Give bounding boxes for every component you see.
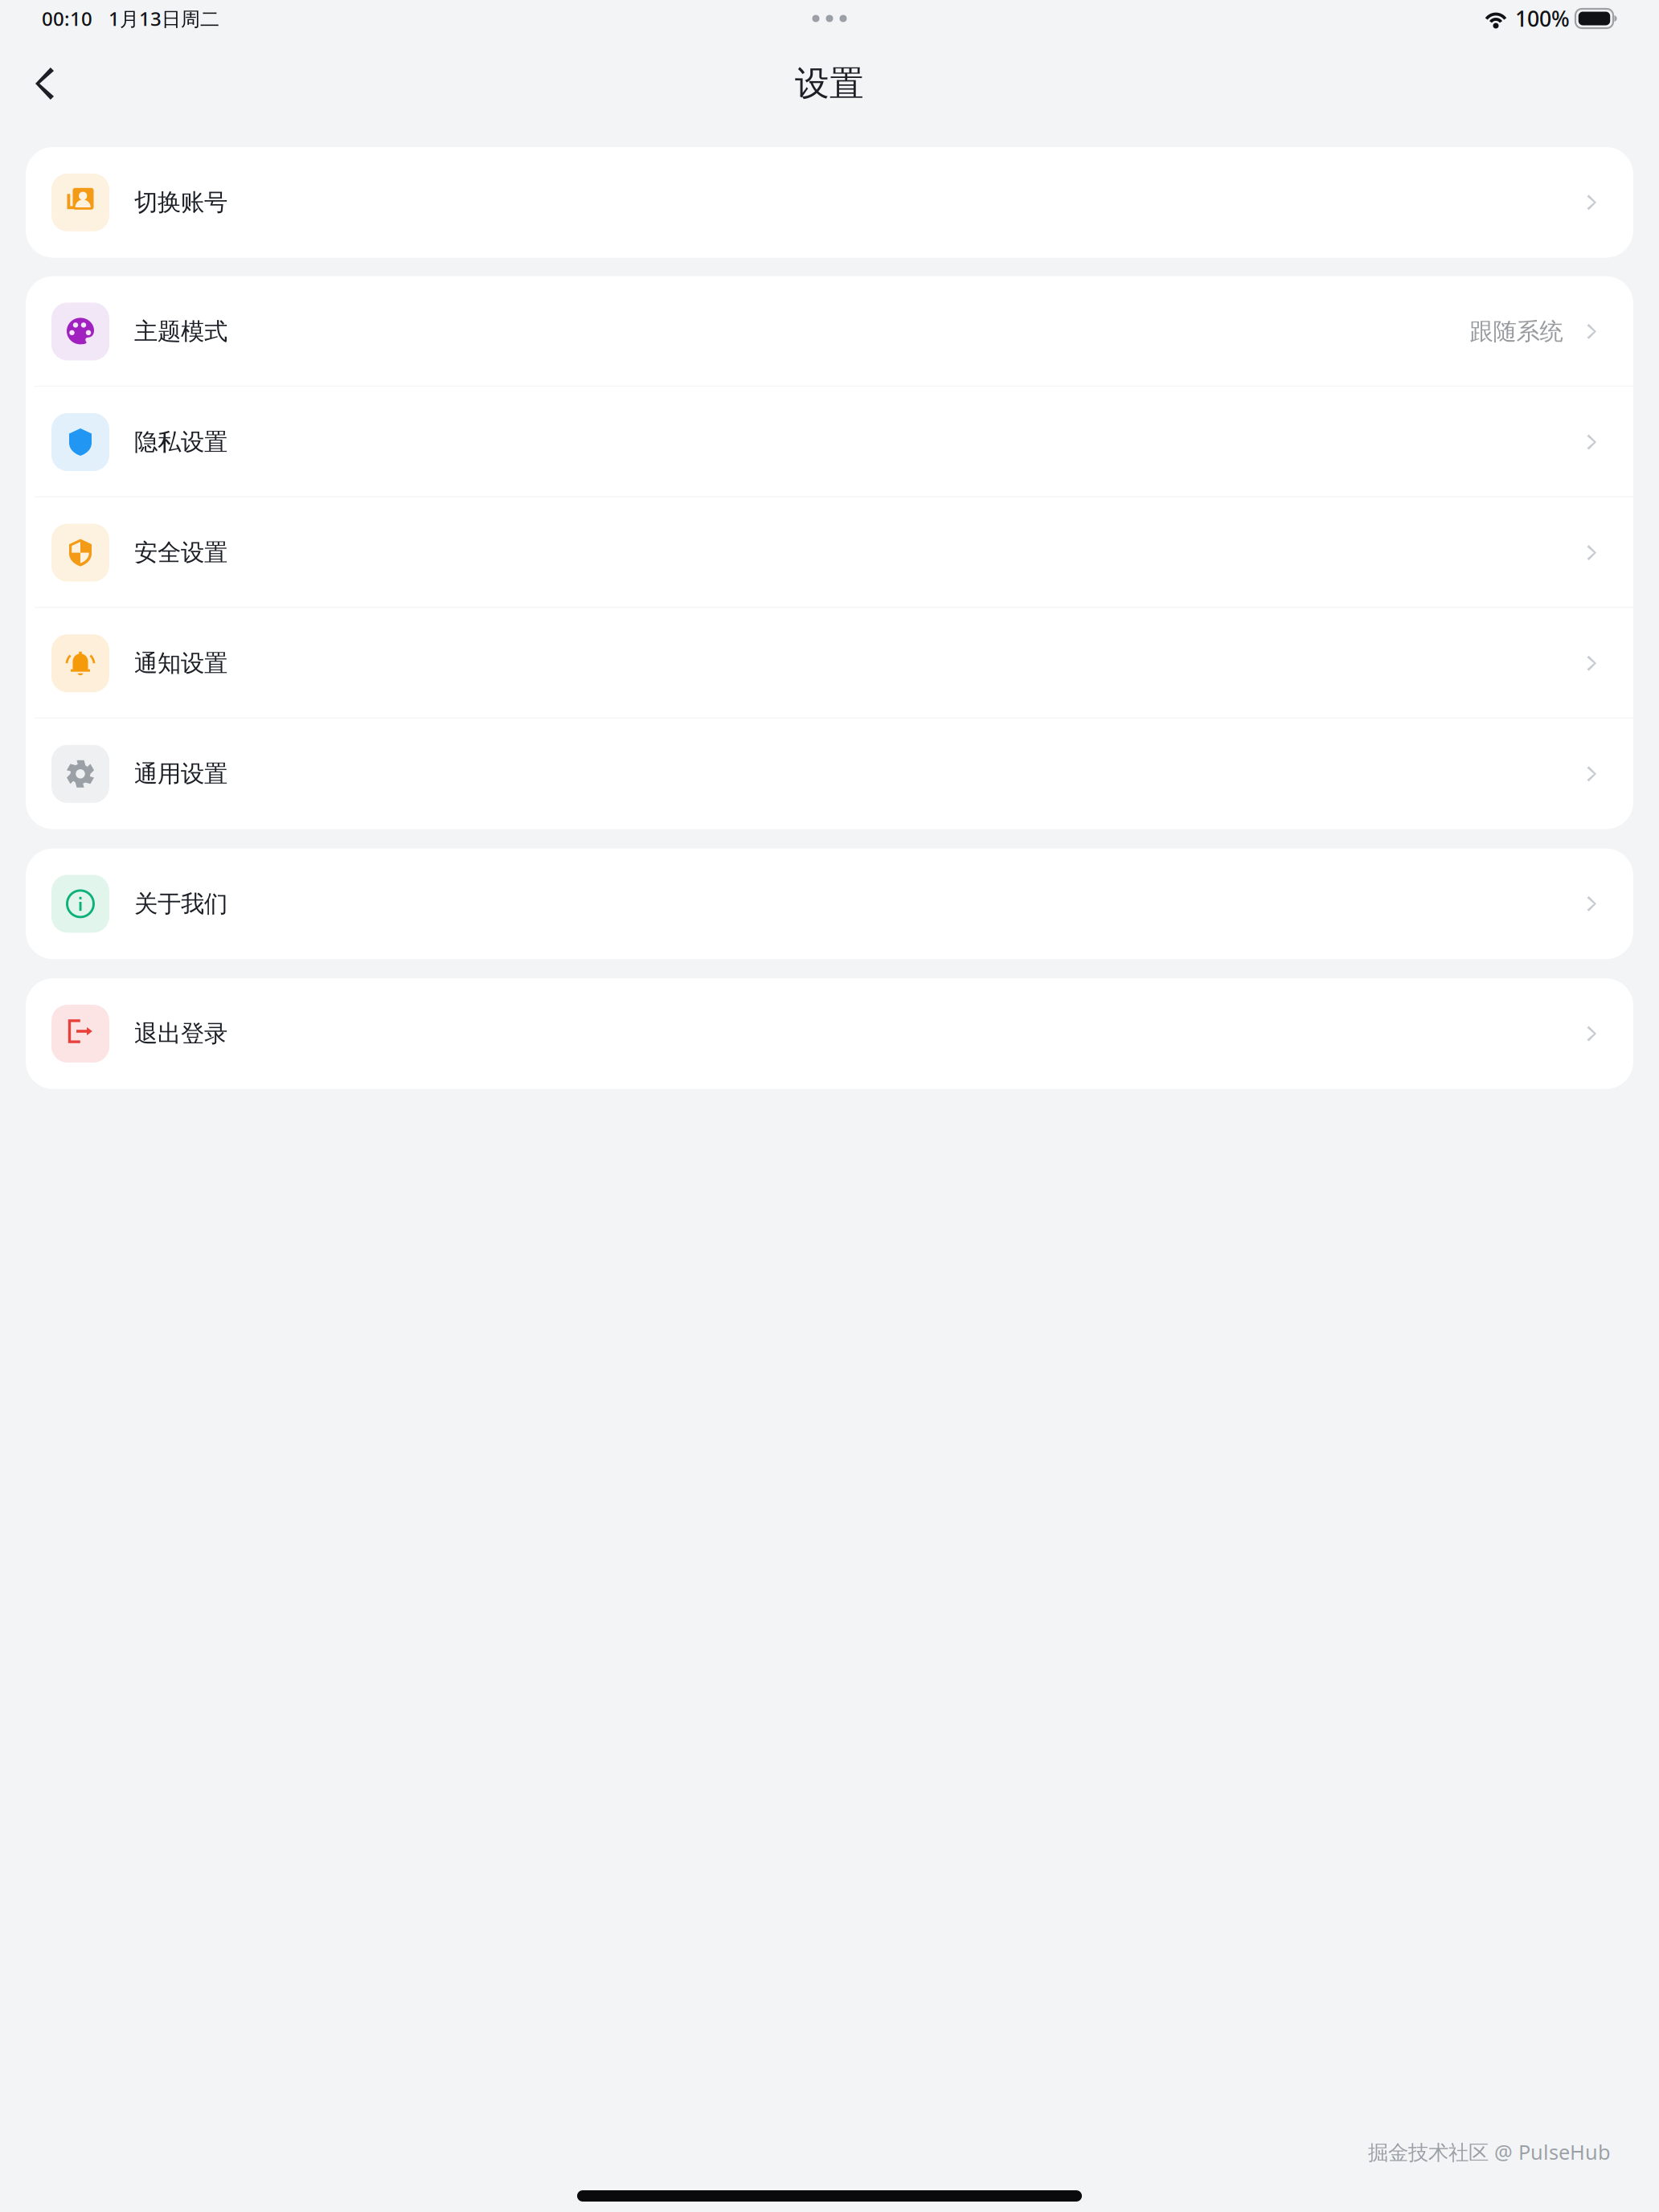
button[interactable]: 安全设置	[26, 497, 1633, 608]
button[interactable]: 切换账号	[26, 147, 1633, 258]
button[interactable]: 关于我们	[26, 848, 1633, 959]
staticText: 掘金技术社区 @ PulseHub	[1368, 2138, 1611, 2165]
staticText: 1月13日周二	[109, 6, 219, 31]
staticText: 100%	[1515, 4, 1570, 33]
button[interactable]: Back	[14, 47, 75, 121]
staticText: 00:10	[42, 6, 92, 31]
button[interactable]: 通用设置	[26, 719, 1633, 829]
button[interactable]: 退出登录	[26, 978, 1633, 1089]
staticText: 跟随系统	[1470, 317, 1563, 346]
staticText: 主题模式	[134, 317, 227, 346]
staticText: 安全设置	[134, 538, 227, 567]
button[interactable]: 通知设置	[26, 608, 1633, 719]
staticText: 通用设置	[134, 759, 227, 788]
staticText: 隐私设置	[134, 428, 227, 457]
staticText: 切换账号	[134, 188, 227, 217]
staticText: 通知设置	[134, 649, 227, 678]
staticText: 设置	[795, 63, 864, 105]
staticText: 关于我们	[134, 889, 227, 918]
button[interactable]: 隐私设置	[26, 387, 1633, 497]
staticText: 退出登录	[134, 1019, 227, 1048]
button[interactable]: 主题模式	[26, 276, 1633, 387]
